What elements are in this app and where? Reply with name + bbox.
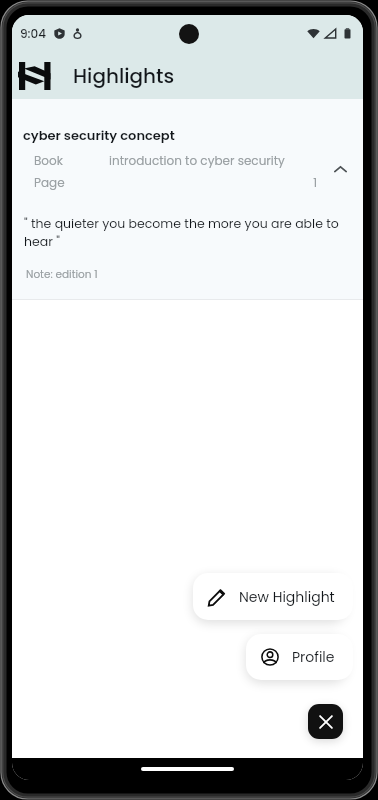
staticText: Book (34, 152, 109, 169)
staticText: cyber security concept (23, 126, 175, 144)
staticText: Note: edition 1 (26, 267, 98, 282)
staticText: introduction to cyber security (109, 152, 285, 169)
button[interactable]: Collapse (317, 152, 363, 186)
staticText: Profile (292, 647, 335, 667)
button[interactable]: cyber security concept (12, 99, 363, 299)
staticText: 1 (109, 174, 317, 191)
staticText: New Highlight (239, 587, 335, 607)
button[interactable]: Profile (246, 634, 353, 680)
button[interactable]: Close menu (308, 704, 343, 739)
staticText: Page (34, 174, 109, 191)
button[interactable]: New Highlight (193, 573, 353, 620)
staticText: Highlights (73, 62, 175, 90)
staticText: " the quieter you become the more you ar… (24, 215, 349, 251)
staticText: 9:04 (20, 25, 47, 42)
